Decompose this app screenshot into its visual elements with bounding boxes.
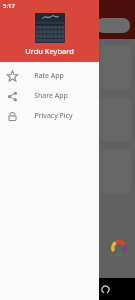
staticText: Urdu Keybard — [25, 46, 74, 56]
other: Share App — [7, 91, 18, 102]
button[interactable]: Recent apps — [97, 281, 113, 297]
button[interactable]: Share App — [0, 86, 99, 106]
staticText: Share App — [34, 91, 68, 101]
staticText: Rate App — [34, 71, 64, 81]
staticText: 5:17 — [3, 2, 15, 10]
staticText: Privacy Picy — [34, 111, 73, 121]
other: Privacy Policy — [7, 111, 18, 122]
button[interactable]: Rate App — [0, 66, 99, 86]
other: Rate App — [7, 71, 18, 82]
button[interactable]: Privacy Policy — [0, 106, 99, 126]
